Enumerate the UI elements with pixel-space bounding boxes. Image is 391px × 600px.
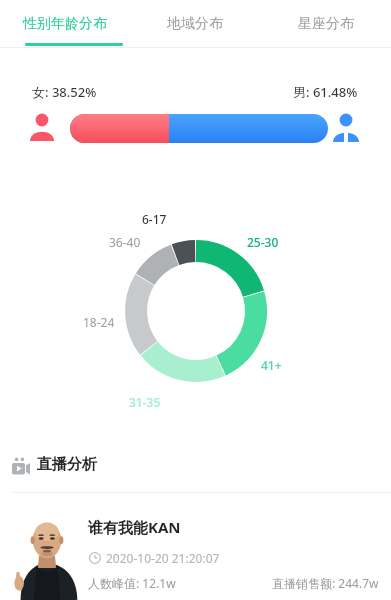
button[interactable]: 性别年龄分布 — [0, 0, 130, 47]
staticText: 直播销售额: 244.7w — [272, 575, 379, 591]
staticText: 直播分析 — [37, 455, 97, 474]
staticText: 18-24 — [83, 314, 115, 330]
button[interactable]: 直播分析 — [0, 442, 391, 492]
button[interactable] — [70, 114, 328, 143]
staticText: 41+ — [261, 357, 282, 373]
staticText: 31-35 — [129, 394, 161, 410]
staticText: 地域分布 — [167, 15, 223, 33]
staticText: 男: 61.48% — [293, 83, 358, 101]
staticText: 女: 38.52% — [32, 83, 97, 101]
staticText: 6-17 — [142, 211, 167, 227]
staticText: 25-30 — [247, 234, 279, 250]
staticText: 谁有我能KAN — [88, 517, 181, 537]
button[interactable]: 星座分布 — [260, 0, 391, 47]
staticText: 36-40 — [109, 234, 141, 250]
other: Gender split — [26, 110, 362, 146]
button[interactable]: 谁有我能KAN — [0, 500, 391, 600]
staticText: 性别年龄分布 — [23, 15, 107, 33]
staticText: 人数峰值: 12.1w — [88, 575, 176, 591]
button[interactable]: 地域分布 — [130, 0, 260, 47]
staticText: 2020-10-20 21:20:07 — [106, 550, 220, 566]
staticText: 星座分布 — [298, 15, 354, 33]
